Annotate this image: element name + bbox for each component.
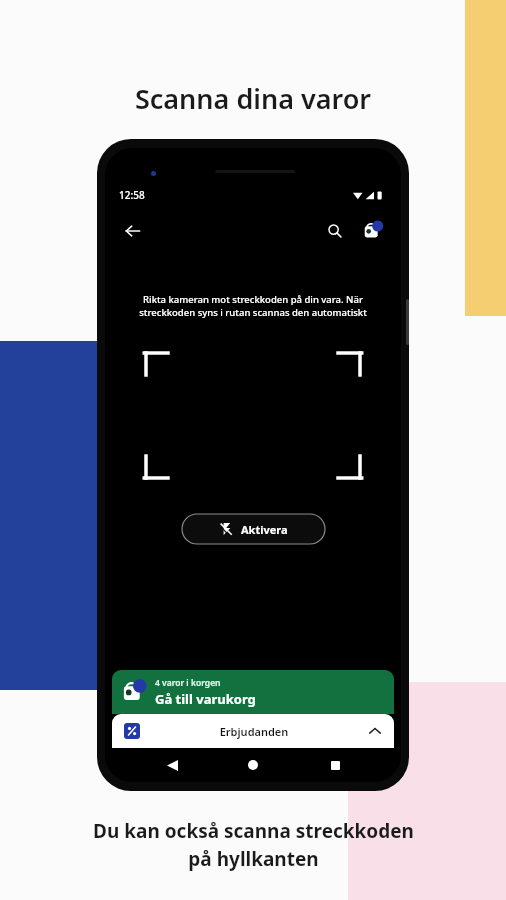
button[interactable]: Erbjudanden [124,714,382,748]
button[interactable]: Search [319,215,351,247]
staticText: 4 varor i korgen [155,677,221,689]
staticText: Scanna dina varor [0,80,506,117]
staticText: Rikta kameran mot streckkoden på din var… [133,293,373,319]
button[interactable]: Cart [357,215,389,247]
button[interactable]: Back [157,750,187,780]
staticText: 12:58 [119,188,145,202]
staticText: på hyllkanten [188,846,319,872]
button[interactable]: Home [238,750,268,780]
button[interactable]: Aktivera [182,514,325,544]
staticText: Gå till varukorg [155,690,256,708]
button[interactable]: Back [117,215,149,247]
staticText: Aktivera [241,522,288,537]
staticText: Du kan också scanna streckkoden [93,818,414,844]
button[interactable]: Recents [320,750,350,780]
button[interactable]: 4 varor i korgen [123,670,383,714]
staticText: Erbjudanden [140,724,368,739]
